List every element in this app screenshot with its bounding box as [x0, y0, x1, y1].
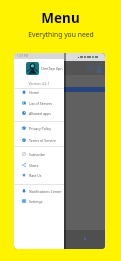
staticText: Share [29, 163, 39, 168]
button[interactable]: Allowed apps [14, 108, 64, 118]
staticText: Terms of Service [29, 138, 56, 143]
staticText: Allowed apps [29, 111, 51, 116]
staticText: Everything you need [28, 30, 94, 39]
button[interactable]: Account [96, 65, 102, 71]
staticText: OneTap Vpn [41, 66, 63, 71]
button[interactable]: Share [14, 160, 64, 170]
staticText: Home [29, 90, 39, 95]
staticText: List of Servers [29, 101, 53, 106]
button[interactable]: Theme [86, 65, 92, 71]
staticText: 1:29 PM [17, 54, 29, 58]
button[interactable]: List of Servers [14, 98, 64, 108]
staticText: Notifications Center [29, 189, 62, 194]
staticText: Version 4.2.1 [14, 81, 64, 86]
button[interactable]: Notifications Center [14, 186, 64, 196]
button[interactable]: Rate Us [14, 170, 64, 180]
staticText: Menu [41, 9, 80, 27]
button[interactable]: Home [14, 87, 64, 97]
button[interactable]: Privacy Policy [14, 123, 64, 133]
button[interactable]: Settings [14, 196, 64, 206]
staticText: Subscribe [29, 152, 46, 157]
staticText: Rate Us [29, 173, 42, 178]
button[interactable]: Terms of Service [14, 135, 64, 145]
button[interactable]: Subscribe [14, 149, 64, 159]
staticText: Privacy Policy [29, 126, 52, 131]
staticText: Settings [29, 199, 43, 204]
